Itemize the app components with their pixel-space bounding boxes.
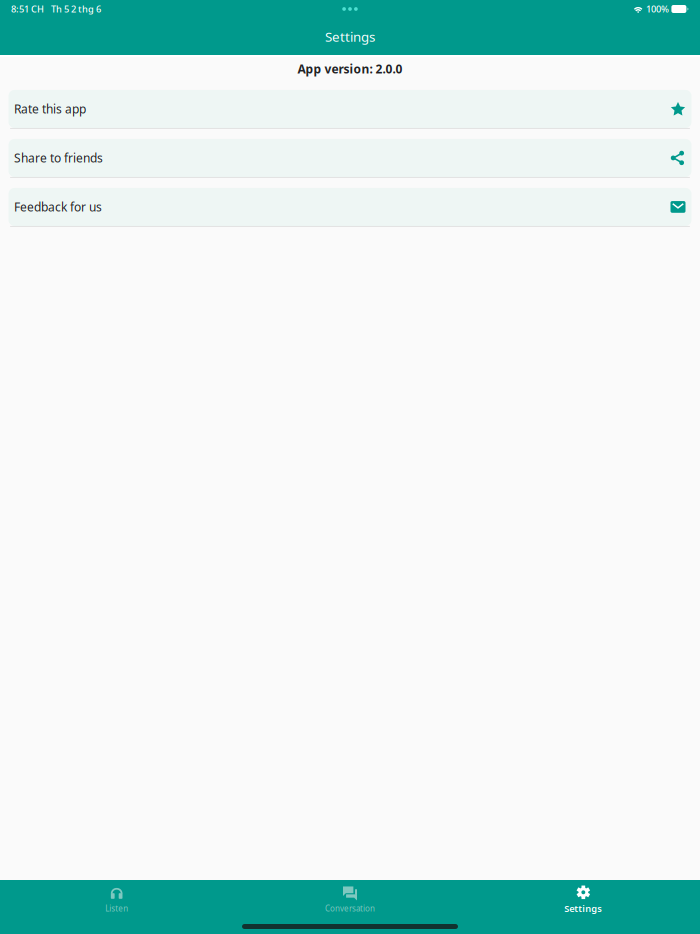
button[interactable]: Settings: [467, 885, 700, 915]
button[interactable]: Feedback for us: [8, 188, 691, 227]
button[interactable]: Conversation: [233, 885, 467, 915]
button[interactable]: Listen: [0, 885, 233, 915]
staticText: Th 5 2 thg 6: [51, 3, 101, 15]
staticText: Rate this app: [14, 101, 86, 117]
staticText: Settings: [325, 28, 375, 45]
staticText: Feedback for us: [14, 199, 102, 215]
staticText: 8:51 CH: [11, 3, 44, 15]
staticText: Listen: [105, 903, 128, 914]
staticText: Conversation: [325, 903, 375, 914]
staticText: Settings: [564, 902, 602, 915]
staticText: 100%: [646, 3, 669, 15]
staticText: App version: 2.0.0: [297, 61, 402, 77]
button[interactable]: Rate this app: [8, 90, 691, 129]
staticText: Share to friends: [14, 150, 103, 166]
button[interactable]: Share to friends: [8, 139, 691, 178]
